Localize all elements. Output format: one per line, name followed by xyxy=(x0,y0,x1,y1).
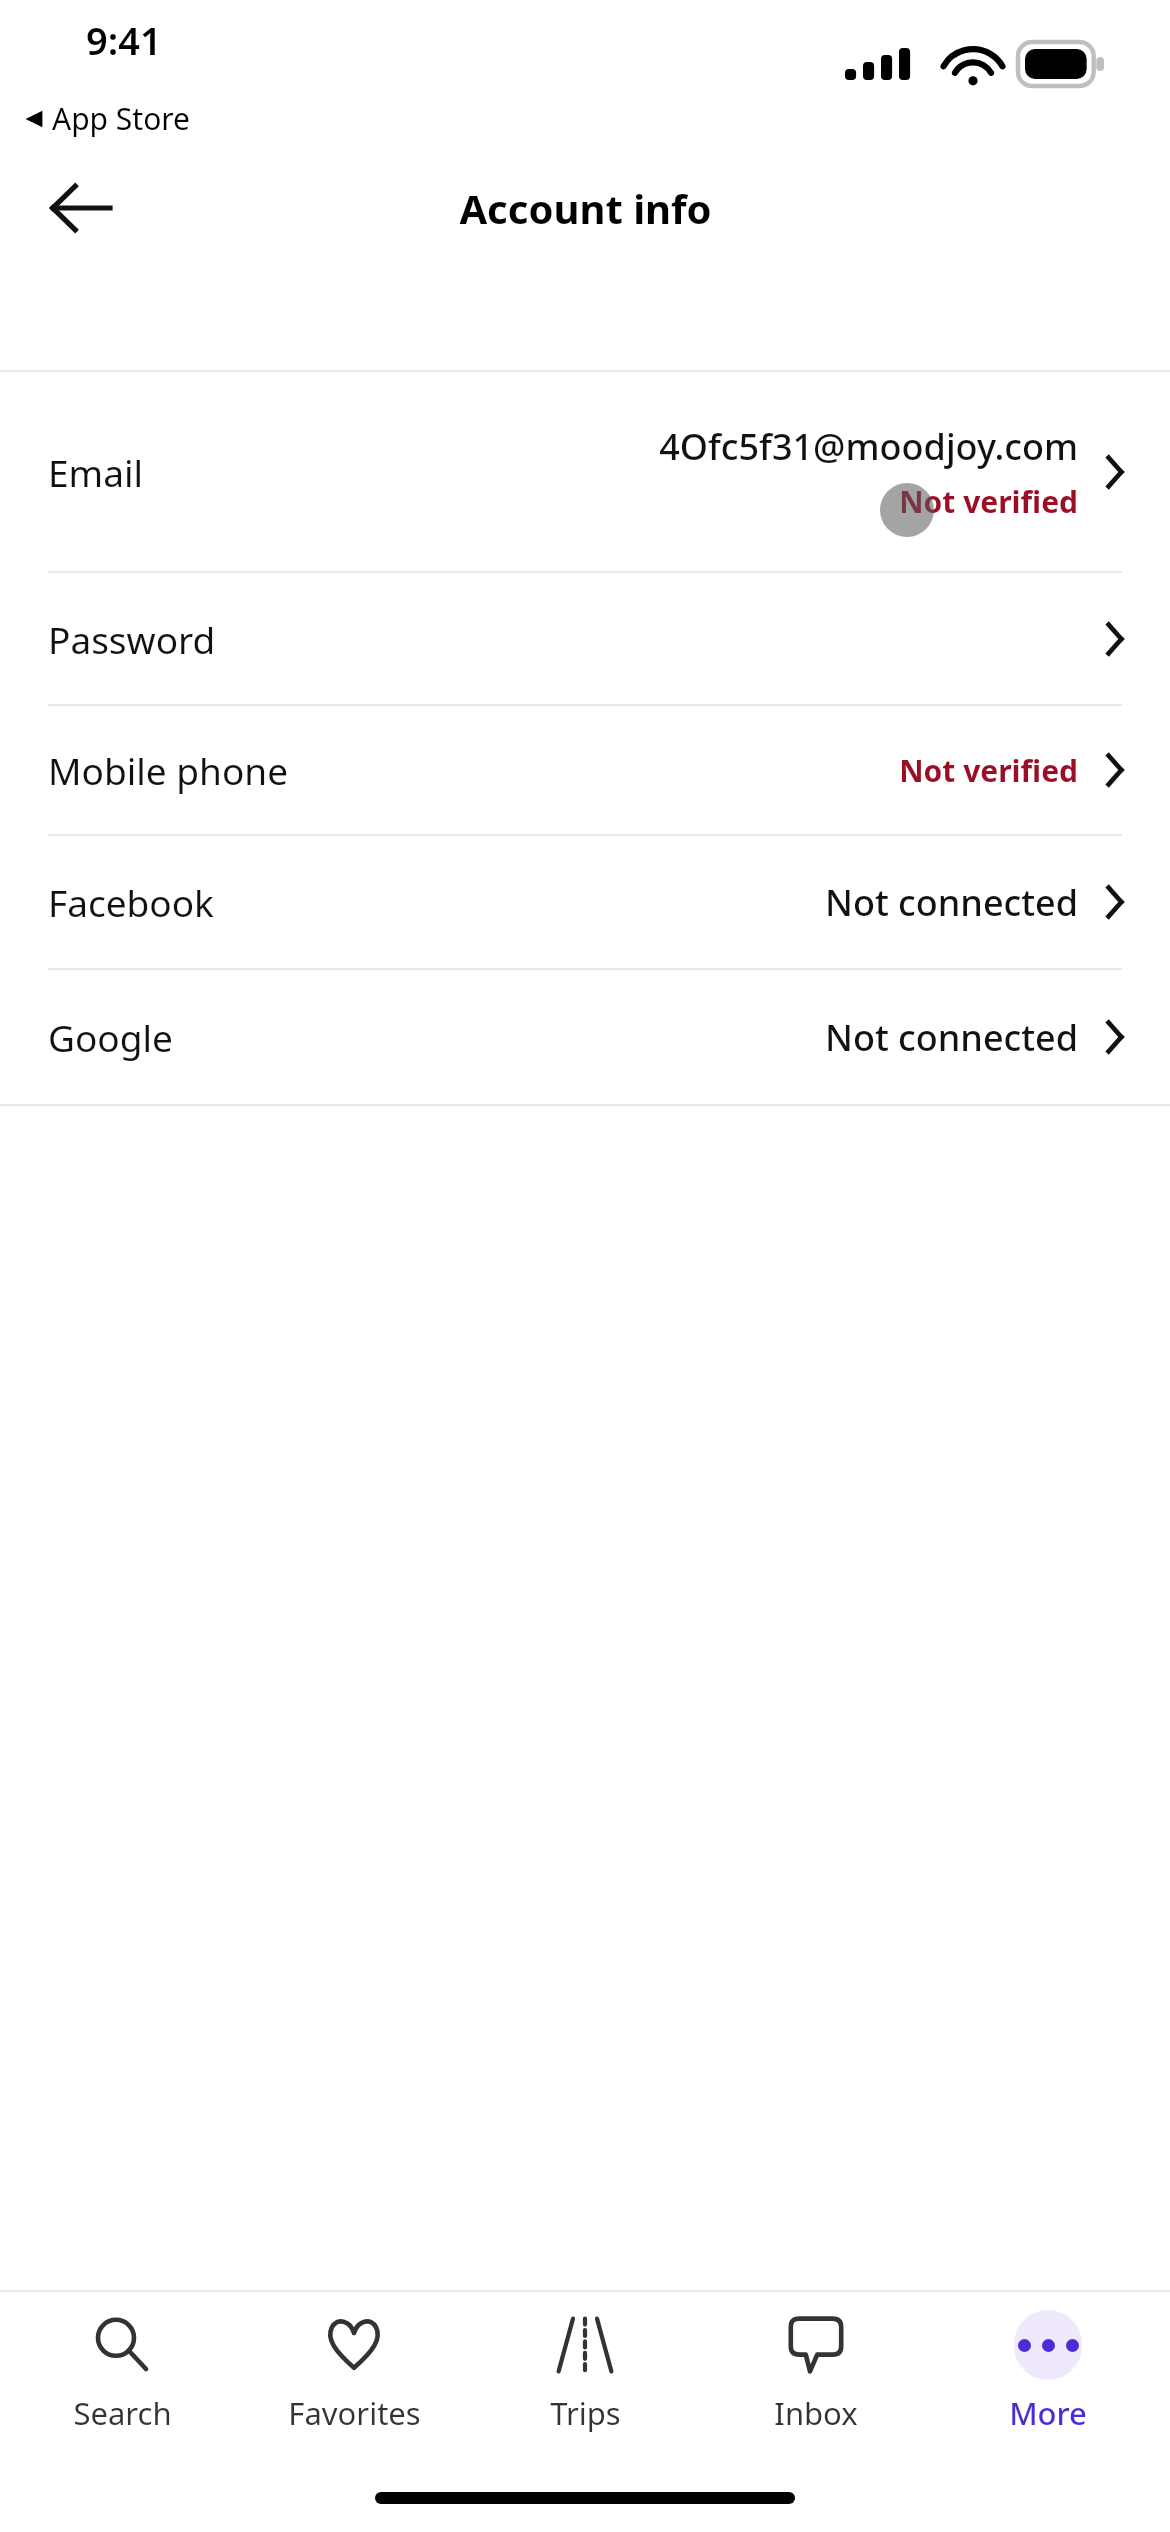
staticText: Search xyxy=(73,2392,172,2434)
button[interactable]: Email xyxy=(0,372,1170,571)
staticText: Inbox xyxy=(774,2392,858,2434)
staticText: Email xyxy=(48,447,144,497)
button[interactable]: Facebook xyxy=(0,836,1170,968)
button[interactable]: Back xyxy=(30,158,130,258)
staticText: Google xyxy=(48,1012,173,1062)
staticText: Not connected xyxy=(824,1013,1078,1062)
staticText: Account info xyxy=(459,181,712,235)
button[interactable]: Google xyxy=(0,970,1170,1104)
button[interactable]: Trips xyxy=(476,2304,694,2438)
staticText: Facebook xyxy=(48,877,214,927)
staticText: 9:41 xyxy=(86,14,162,66)
button[interactable]: More xyxy=(939,2304,1157,2438)
button[interactable]: Inbox xyxy=(707,2304,925,2438)
staticText: 4Ofc5f31@moodjoy.com xyxy=(659,422,1078,471)
button[interactable]: Favorites xyxy=(245,2304,463,2438)
staticText: More xyxy=(1009,2392,1087,2434)
button[interactable]: Search xyxy=(13,2304,231,2438)
staticText: Not verified xyxy=(899,750,1078,791)
staticText: Not verified xyxy=(899,481,1078,522)
staticText: Not connected xyxy=(824,878,1078,927)
button[interactable]: Mobile phone xyxy=(0,706,1170,834)
button[interactable]: Password xyxy=(0,573,1170,704)
staticText: Favorites xyxy=(288,2392,421,2434)
staticText: Trips xyxy=(550,2392,621,2434)
staticText: App Store xyxy=(52,98,191,139)
staticText: Mobile phone xyxy=(48,745,289,795)
staticText: Password xyxy=(48,614,216,664)
